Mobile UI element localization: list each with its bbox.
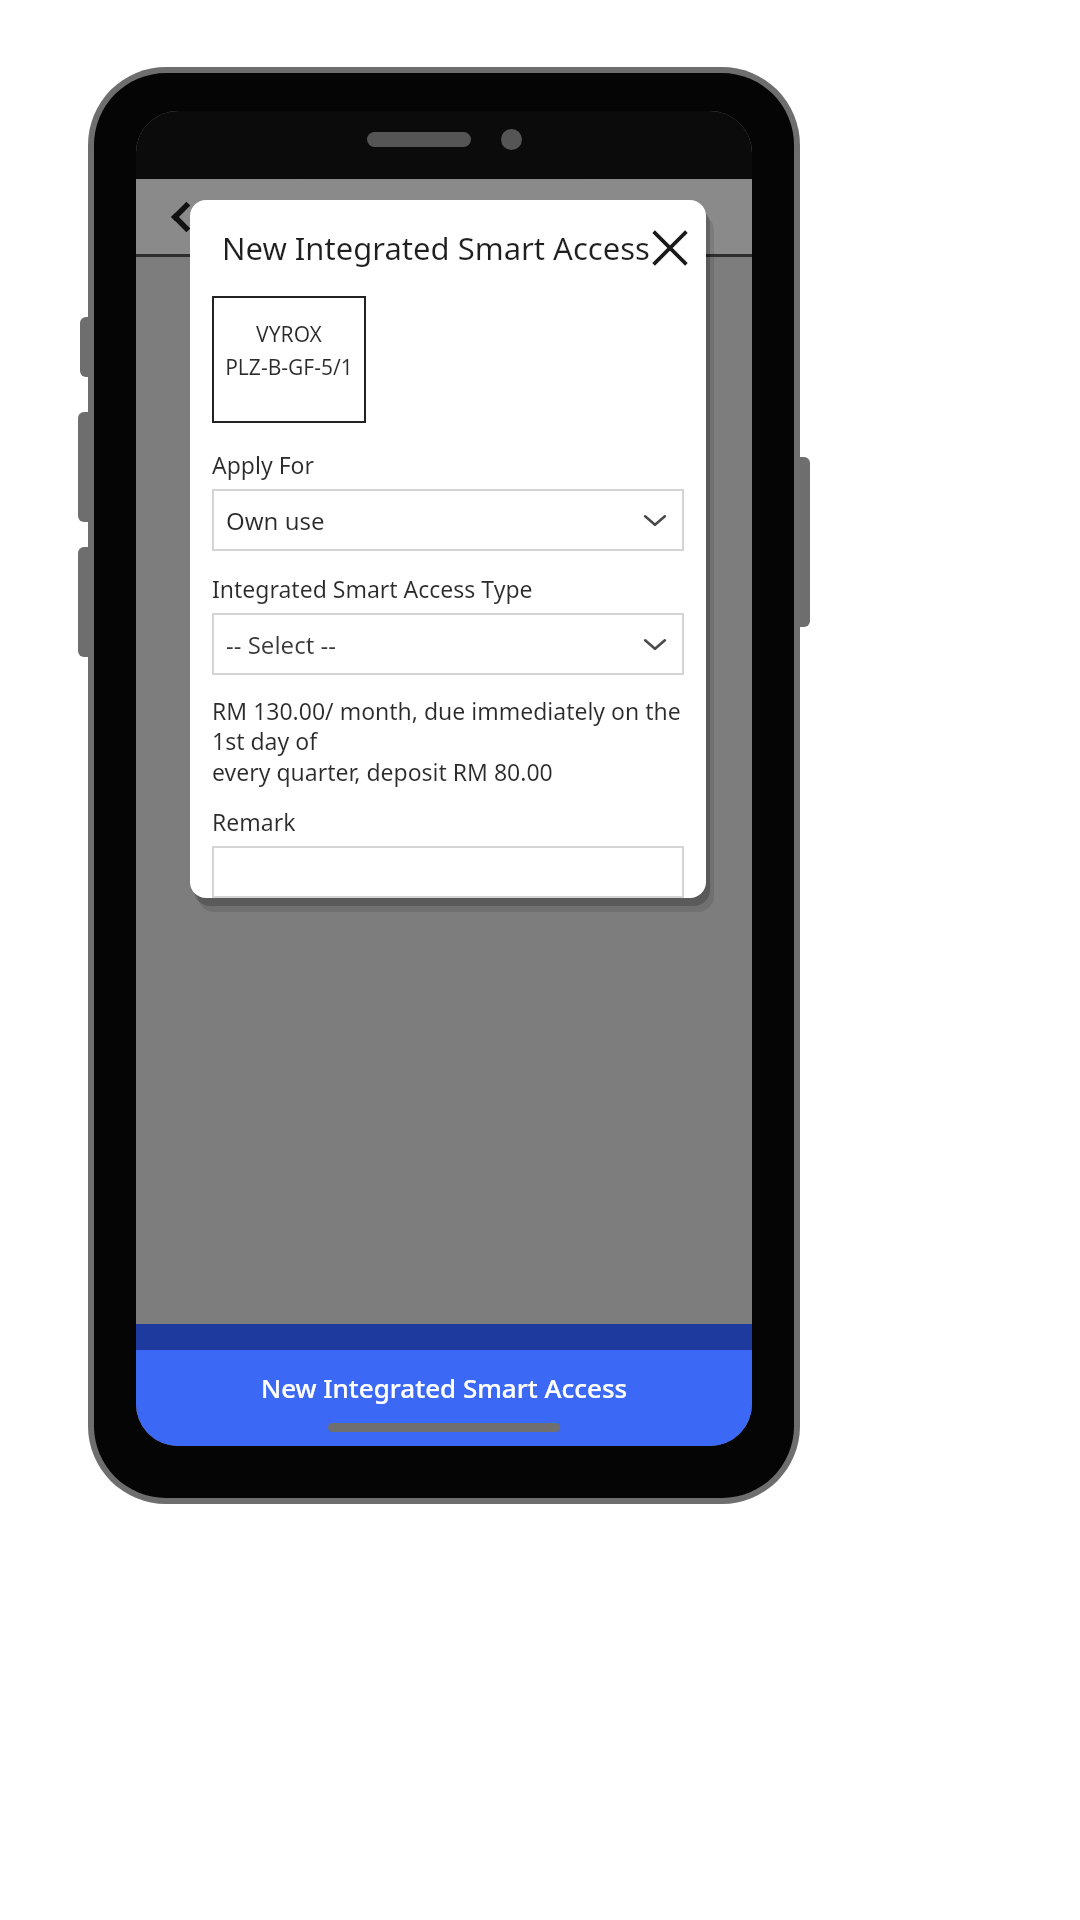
- button[interactable]: -- Select --: [212, 613, 684, 675]
- staticText: PLZ-B-GF-5/1: [225, 353, 353, 382]
- staticText: VYROX: [256, 320, 322, 349]
- button[interactable]: Close: [642, 220, 698, 276]
- button[interactable]: [212, 846, 684, 898]
- button[interactable]: VYROX: [212, 296, 366, 423]
- button[interactable]: Back: [150, 186, 212, 248]
- staticText: RM 130.00/ month, due immediately on the…: [212, 695, 684, 788]
- staticText: -- Select --: [226, 628, 337, 661]
- staticText: New Integrated Smart Access: [261, 1370, 628, 1405]
- button[interactable]: Own use: [212, 489, 684, 551]
- staticText: Integrated Smart Access Type: [212, 573, 533, 604]
- staticText: Apply For: [212, 449, 314, 480]
- staticText: New Integrated Smart Access: [222, 227, 650, 269]
- staticText: Own use: [226, 504, 325, 537]
- button[interactable]: New Integrated Smart Access: [136, 1350, 752, 1446]
- staticText: Remark: [212, 806, 296, 837]
- staticText: Integrated Smart Access: [279, 198, 610, 235]
